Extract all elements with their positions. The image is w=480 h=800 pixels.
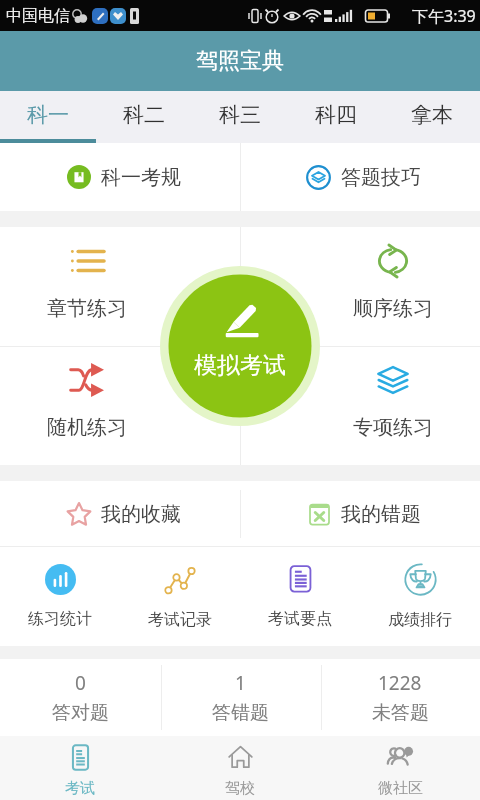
button[interactable]: 考试要点: [240, 547, 360, 646]
staticText: 我的收藏: [101, 502, 181, 527]
staticText: 练习统计: [28, 609, 92, 629]
button[interactable]: 专项练习: [333, 363, 453, 458]
staticText: 1: [235, 670, 246, 696]
staticText: 随机练习: [47, 415, 127, 440]
staticText: 我的错题: [341, 502, 421, 527]
staticText: 科三: [219, 102, 261, 128]
staticText: 答题技巧: [341, 165, 421, 190]
button[interactable]: 科四: [288, 91, 384, 143]
button[interactable]: 成绩排行: [360, 547, 480, 646]
staticText: 未答题: [372, 701, 429, 725]
button[interactable]: 1228: [320, 659, 480, 736]
button[interactable]: 拿本: [384, 91, 480, 143]
staticText: 考试要点: [268, 609, 332, 629]
staticText: 驾校: [225, 779, 255, 798]
button[interactable]: 1: [160, 659, 320, 736]
button[interactable]: 考试: [0, 736, 160, 800]
button[interactable]: 模拟考试: [168, 274, 312, 418]
staticText: 答错题: [212, 701, 269, 725]
button[interactable]: 科三: [192, 91, 288, 143]
staticText: 1228: [378, 670, 422, 696]
staticText: 科一考规: [101, 165, 181, 190]
button[interactable]: 科一考规: [0, 143, 240, 211]
staticText: 0: [75, 670, 86, 696]
staticText: 科四: [315, 102, 357, 128]
button[interactable]: 0: [0, 659, 160, 736]
button[interactable]: 顺序练习: [333, 244, 453, 339]
staticText: 章节练习: [47, 296, 127, 321]
staticText: 考试: [65, 779, 95, 798]
button[interactable]: 我的收藏: [0, 481, 240, 547]
staticText: 考试记录: [148, 610, 212, 630]
staticText: 拿本: [411, 102, 453, 128]
button[interactable]: 驾校: [160, 736, 320, 800]
button[interactable]: 微社区: [320, 736, 480, 800]
button[interactable]: 章节练习: [27, 244, 147, 339]
staticText: 科二: [123, 102, 165, 128]
staticText: 成绩排行: [388, 610, 452, 630]
staticText: 答对题: [52, 701, 109, 725]
staticText: 专项练习: [353, 415, 433, 440]
button[interactable]: 我的错题: [240, 481, 480, 547]
button[interactable]: 科一: [0, 91, 96, 143]
staticText: 驾照宝典: [196, 47, 284, 75]
staticText: 微社区: [378, 779, 423, 798]
button[interactable]: 答题技巧: [240, 143, 480, 211]
staticText: 模拟考试: [194, 351, 286, 380]
staticText: 中国电信: [6, 6, 70, 26]
staticText: 顺序练习: [353, 296, 433, 321]
button[interactable]: 科二: [96, 91, 192, 143]
staticText: 科一: [27, 102, 69, 128]
button[interactable]: 练习统计: [0, 547, 120, 646]
button[interactable]: 随机练习: [27, 363, 147, 458]
staticText: 下午3:39: [412, 5, 476, 27]
button[interactable]: 考试记录: [120, 547, 240, 646]
